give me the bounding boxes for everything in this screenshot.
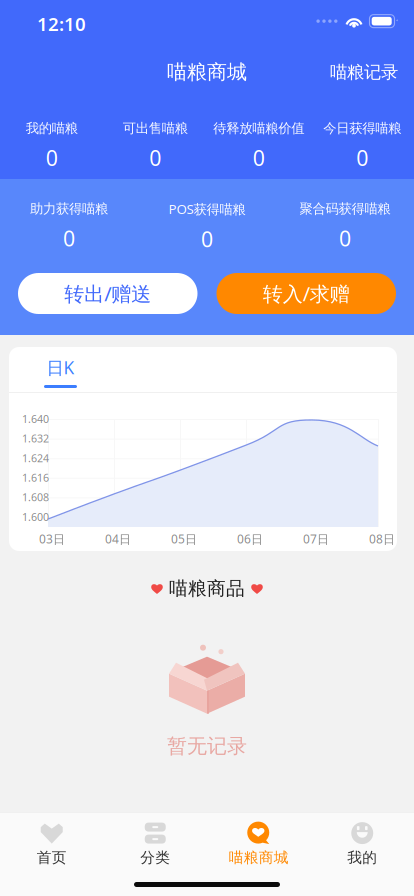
staticText: 0 (253, 143, 265, 172)
staticText: 日K (46, 356, 74, 379)
staticText: 我的喵粮 (26, 120, 78, 136)
staticText: 1.640 (22, 412, 49, 426)
staticText: 03日 (39, 531, 65, 547)
staticText: 可出售喵粮 (123, 120, 188, 136)
staticText: 今日获得喵粮 (323, 120, 401, 136)
staticText: 0 (201, 225, 213, 253)
staticText: 转入/求赠 (263, 280, 350, 307)
staticText: 助力获得喵粮 (30, 201, 108, 217)
staticText: POS获得喵粮 (168, 200, 245, 218)
button[interactable]: 日K (9, 347, 93, 392)
staticText: 待释放喵粮价值 (213, 120, 304, 136)
button[interactable]: 首页 (0, 816, 103, 871)
staticText: 0 (356, 143, 368, 172)
button[interactable]: 喵粮商城 (207, 816, 310, 871)
staticText: 喵粮记录 (330, 61, 398, 83)
staticText: 0 (149, 143, 161, 172)
staticText: 1.624 (22, 451, 49, 465)
button[interactable]: 我的 (310, 816, 414, 871)
staticText: 喵粮商城 (229, 849, 289, 867)
staticText: 喵粮商城 (167, 60, 247, 84)
staticText: 0 (339, 224, 351, 252)
staticText: 首页 (37, 849, 67, 867)
staticText: 我的 (347, 849, 377, 867)
button[interactable]: 分类 (103, 816, 207, 871)
staticText: 1.616 (22, 470, 49, 485)
staticText: 06日 (237, 531, 263, 547)
button[interactable]: 转出/赠送 (18, 273, 197, 314)
staticText: 08日 (369, 531, 395, 547)
staticText: 0 (46, 143, 58, 172)
button[interactable]: 喵粮记录 (314, 50, 414, 94)
staticText: 0 (63, 224, 75, 252)
staticText: 07日 (303, 531, 329, 547)
staticText: 1.600 (22, 510, 49, 524)
button[interactable]: 转入/求赠 (216, 273, 396, 314)
staticText: 暂无记录 (167, 734, 247, 758)
staticText: 转出/赠送 (64, 280, 151, 307)
staticText: 喵粮商品 (169, 577, 245, 600)
staticText: 05日 (171, 531, 197, 547)
staticText: 04日 (105, 531, 131, 547)
staticText: 1.632 (22, 431, 49, 445)
staticText: 聚合码获得喵粮 (299, 201, 390, 217)
staticText: 12:10 (37, 11, 86, 36)
staticText: 1.608 (22, 490, 49, 504)
staticText: 分类 (140, 849, 170, 867)
